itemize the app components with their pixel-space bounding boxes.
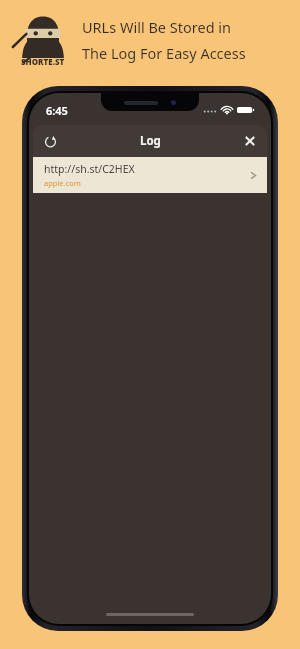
staticText: Log — [140, 133, 161, 149]
button[interactable]: http://sh.st/C2HEX — [33, 157, 267, 193]
staticText: http://sh.st/C2HEX — [44, 162, 135, 176]
staticText: SHORTE.ST — [21, 56, 65, 67]
staticText: The Log For Easy Access — [82, 43, 246, 63]
staticText: 6:45 — [46, 103, 68, 118]
staticText: URLs Will Be Stored in — [82, 17, 232, 37]
button[interactable]: Close — [238, 129, 262, 153]
button[interactable]: Refresh — [38, 129, 62, 153]
staticText: apple.com — [44, 178, 81, 188]
